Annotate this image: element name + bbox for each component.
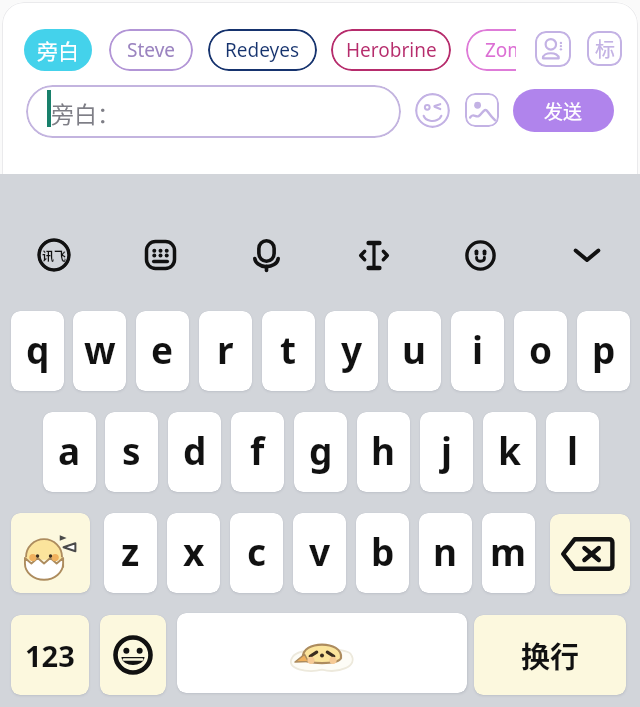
button[interactable]: c: [230, 513, 283, 593]
button[interactable]: l: [546, 412, 599, 492]
button[interactable]: t: [262, 311, 315, 391]
staticText: n: [433, 526, 458, 576]
button[interactable]: e: [136, 311, 189, 391]
staticText: 旁白：: [51, 96, 120, 129]
button[interactable]: 旁白: [24, 29, 92, 71]
staticText: d: [183, 425, 207, 475]
staticText: Redeyes: [225, 37, 300, 63]
staticText: Herobrine: [346, 37, 437, 63]
button[interactable]: u: [388, 311, 441, 391]
button[interactable]: Emoji: [415, 93, 450, 128]
button[interactable]: b: [356, 513, 409, 593]
button[interactable]: Emoji keyboard: [100, 615, 166, 695]
staticText: Steve: [127, 37, 175, 63]
button[interactable]: 换行: [474, 615, 626, 695]
staticText: y: [341, 324, 363, 374]
staticText: w: [84, 324, 116, 374]
button[interactable]: n: [419, 513, 472, 593]
button[interactable]: Contacts: [535, 31, 571, 67]
staticText: i: [472, 324, 484, 374]
button[interactable]: Hide keyboard: [572, 241, 602, 269]
button[interactable]: k: [483, 412, 536, 492]
staticText: p: [592, 324, 616, 374]
staticText: r: [217, 324, 234, 374]
staticText: c: [247, 526, 267, 576]
staticText: z: [121, 526, 140, 576]
staticText: j: [441, 425, 453, 475]
button[interactable]: q: [11, 311, 64, 391]
staticText: 换行: [521, 634, 580, 676]
button[interactable]: 123: [11, 615, 89, 695]
button[interactable]: r: [199, 311, 252, 391]
button[interactable]: Zombie: [466, 29, 606, 71]
staticText: u: [402, 324, 427, 374]
staticText: x: [183, 526, 205, 576]
button[interactable]: Image: [465, 93, 499, 127]
button[interactable]: Herobrine: [331, 29, 451, 71]
staticText: Zombie: [485, 37, 553, 63]
staticText: h: [371, 425, 396, 475]
staticText: 讯飞: [42, 247, 67, 264]
button[interactable]: j: [420, 412, 473, 492]
button[interactable]: Redeyes: [208, 29, 317, 71]
button[interactable]: Keyboard: [145, 240, 176, 270]
staticText: 旁白: [37, 35, 79, 65]
staticText: 发送: [544, 97, 583, 125]
button[interactable]: Space: [177, 613, 467, 693]
button[interactable]: a: [43, 412, 96, 492]
button[interactable]: w: [73, 311, 126, 391]
staticText: q: [26, 324, 50, 374]
button[interactable]: Steve: [109, 29, 193, 71]
staticText: 123: [25, 636, 75, 675]
button[interactable]: f: [231, 412, 284, 492]
button[interactable]: 发送: [513, 89, 614, 132]
button[interactable]: d: [168, 412, 221, 492]
button[interactable]: v: [293, 513, 346, 593]
staticText: s: [122, 425, 141, 475]
button[interactable]: h: [357, 412, 410, 492]
button[interactable]: i: [451, 311, 504, 391]
staticText: l: [567, 425, 579, 475]
staticText: e: [151, 324, 174, 374]
staticText: v: [309, 526, 331, 576]
button[interactable]: 标: [587, 31, 622, 66]
staticText: b: [371, 526, 395, 576]
button[interactable]: p: [577, 311, 630, 391]
staticText: t: [280, 324, 297, 374]
button[interactable]: Voice input: [254, 240, 279, 271]
button[interactable]: x: [167, 513, 220, 593]
button[interactable]: Move cursor: [359, 241, 389, 270]
button[interactable]: 旁白：: [26, 85, 401, 138]
staticText: o: [529, 324, 553, 374]
staticText: a: [58, 425, 81, 475]
button[interactable]: Input method: [37, 238, 71, 272]
button[interactable]: o: [514, 311, 567, 391]
button[interactable]: m: [482, 513, 535, 593]
button[interactable]: Emoticons: [465, 240, 496, 271]
button[interactable]: y: [325, 311, 378, 391]
staticText: g: [309, 425, 333, 475]
button[interactable]: z: [104, 513, 157, 593]
button[interactable]: s: [105, 412, 158, 492]
staticText: f: [250, 425, 265, 475]
staticText: k: [498, 425, 521, 475]
button[interactable]: Shift: [11, 513, 90, 593]
button[interactable]: g: [294, 412, 347, 492]
staticText: 标: [595, 34, 615, 63]
button[interactable]: Backspace: [550, 514, 630, 594]
staticText: m: [490, 526, 527, 576]
